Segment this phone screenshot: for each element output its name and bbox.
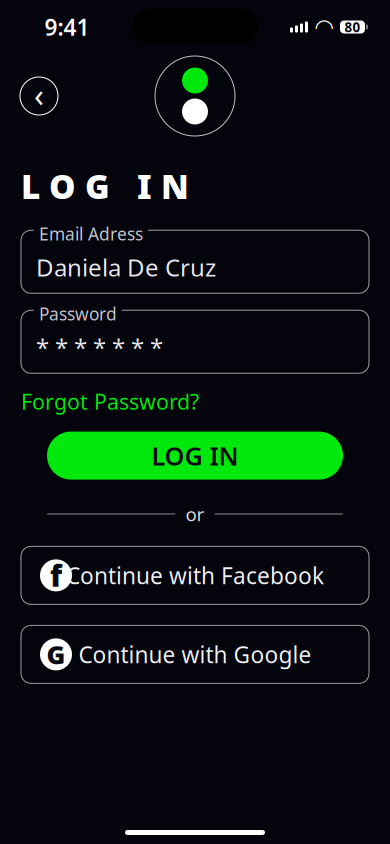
button[interactable]: Back [20,77,58,115]
staticText: Password [39,302,117,325]
button[interactable]: LOG IN [47,432,343,480]
staticText: ‹ [34,73,44,116]
staticText: or [185,502,204,526]
button[interactable]: Forgot Password? [21,387,199,416]
staticText: Forgot Password? [21,387,199,416]
staticText: Email Adress [39,222,143,245]
staticText: L O G I N [21,164,189,208]
staticText: Continue with Google [78,639,311,669]
staticText: f [50,556,62,595]
button[interactable]: Continue with Facebook [21,546,369,604]
staticText: LOG IN [151,439,238,472]
staticText: ◠ [315,14,332,40]
staticText: G [46,638,65,671]
staticText: * * * * * * * [36,331,163,363]
staticText: Continue with Facebook [66,560,324,590]
staticText: Daniela De Cruz [36,251,216,283]
button[interactable]: Continue with Google [21,625,369,683]
staticText: 80 [344,18,360,36]
staticText: 9:41 [44,12,89,42]
